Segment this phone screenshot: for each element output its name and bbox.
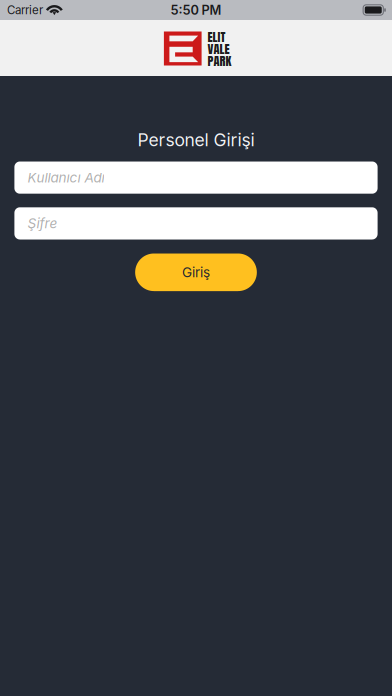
staticText: ELIT <box>208 27 226 46</box>
staticText: Giriş <box>182 264 210 281</box>
staticText: 5:50 PM <box>170 2 221 18</box>
staticText: Personel Girişi <box>137 129 254 150</box>
staticText: Carrier <box>7 3 43 17</box>
staticText: PARK <box>208 51 232 70</box>
button[interactable]: Giriş <box>135 253 257 291</box>
staticText: VALE <box>208 39 230 58</box>
staticText: Şifre <box>27 215 57 232</box>
staticText: Kullanıcı Adı <box>27 169 104 186</box>
